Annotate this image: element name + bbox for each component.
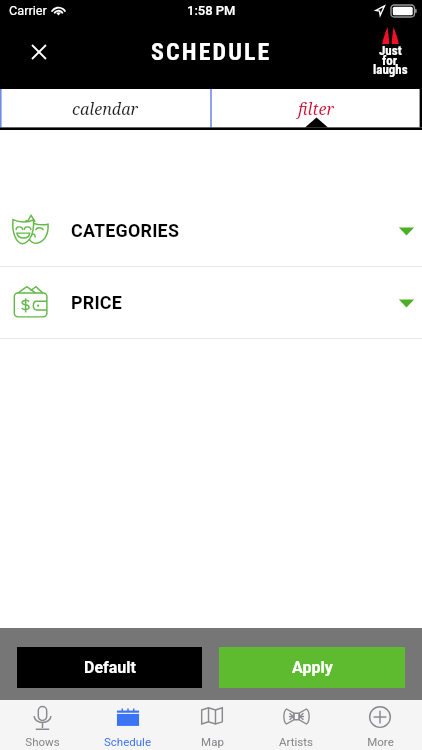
button[interactable]: Map — [170, 700, 254, 750]
staticText: filter — [298, 98, 335, 120]
button[interactable]: More — [338, 700, 422, 750]
staticText: More — [367, 735, 394, 748]
staticText: laughs — [373, 62, 408, 77]
button[interactable]: Just for Laughs — [371, 25, 409, 82]
staticText: Schedule — [104, 735, 151, 748]
staticText: Default — [84, 658, 136, 677]
staticText: Apply — [292, 658, 333, 677]
button[interactable]: CATEGORIES — [0, 195, 422, 266]
button[interactable]: Schedule — [85, 700, 170, 750]
button[interactable]: Apply — [219, 647, 405, 688]
staticText: Shows — [25, 735, 60, 748]
button[interactable]: Artists — [254, 700, 338, 750]
staticText: calendar — [72, 98, 139, 120]
button[interactable]: Close — [23, 36, 55, 68]
staticText: Carrier — [9, 3, 47, 18]
button[interactable]: calendar — [0, 89, 211, 130]
staticText: for — [382, 53, 398, 68]
button[interactable]: Default — [17, 647, 202, 688]
button[interactable]: Shows — [0, 700, 85, 750]
button[interactable]: filter — [211, 89, 422, 130]
staticText: 1:58 PM — [187, 3, 236, 18]
staticText: CATEGORIES — [71, 220, 180, 241]
staticText: Map — [201, 735, 224, 748]
staticText: SCHEDULE — [151, 38, 272, 66]
staticText: Just — [379, 43, 402, 58]
staticText: Artists — [279, 735, 313, 748]
button[interactable]: PRICE — [0, 267, 422, 338]
staticText: PRICE — [71, 292, 122, 313]
